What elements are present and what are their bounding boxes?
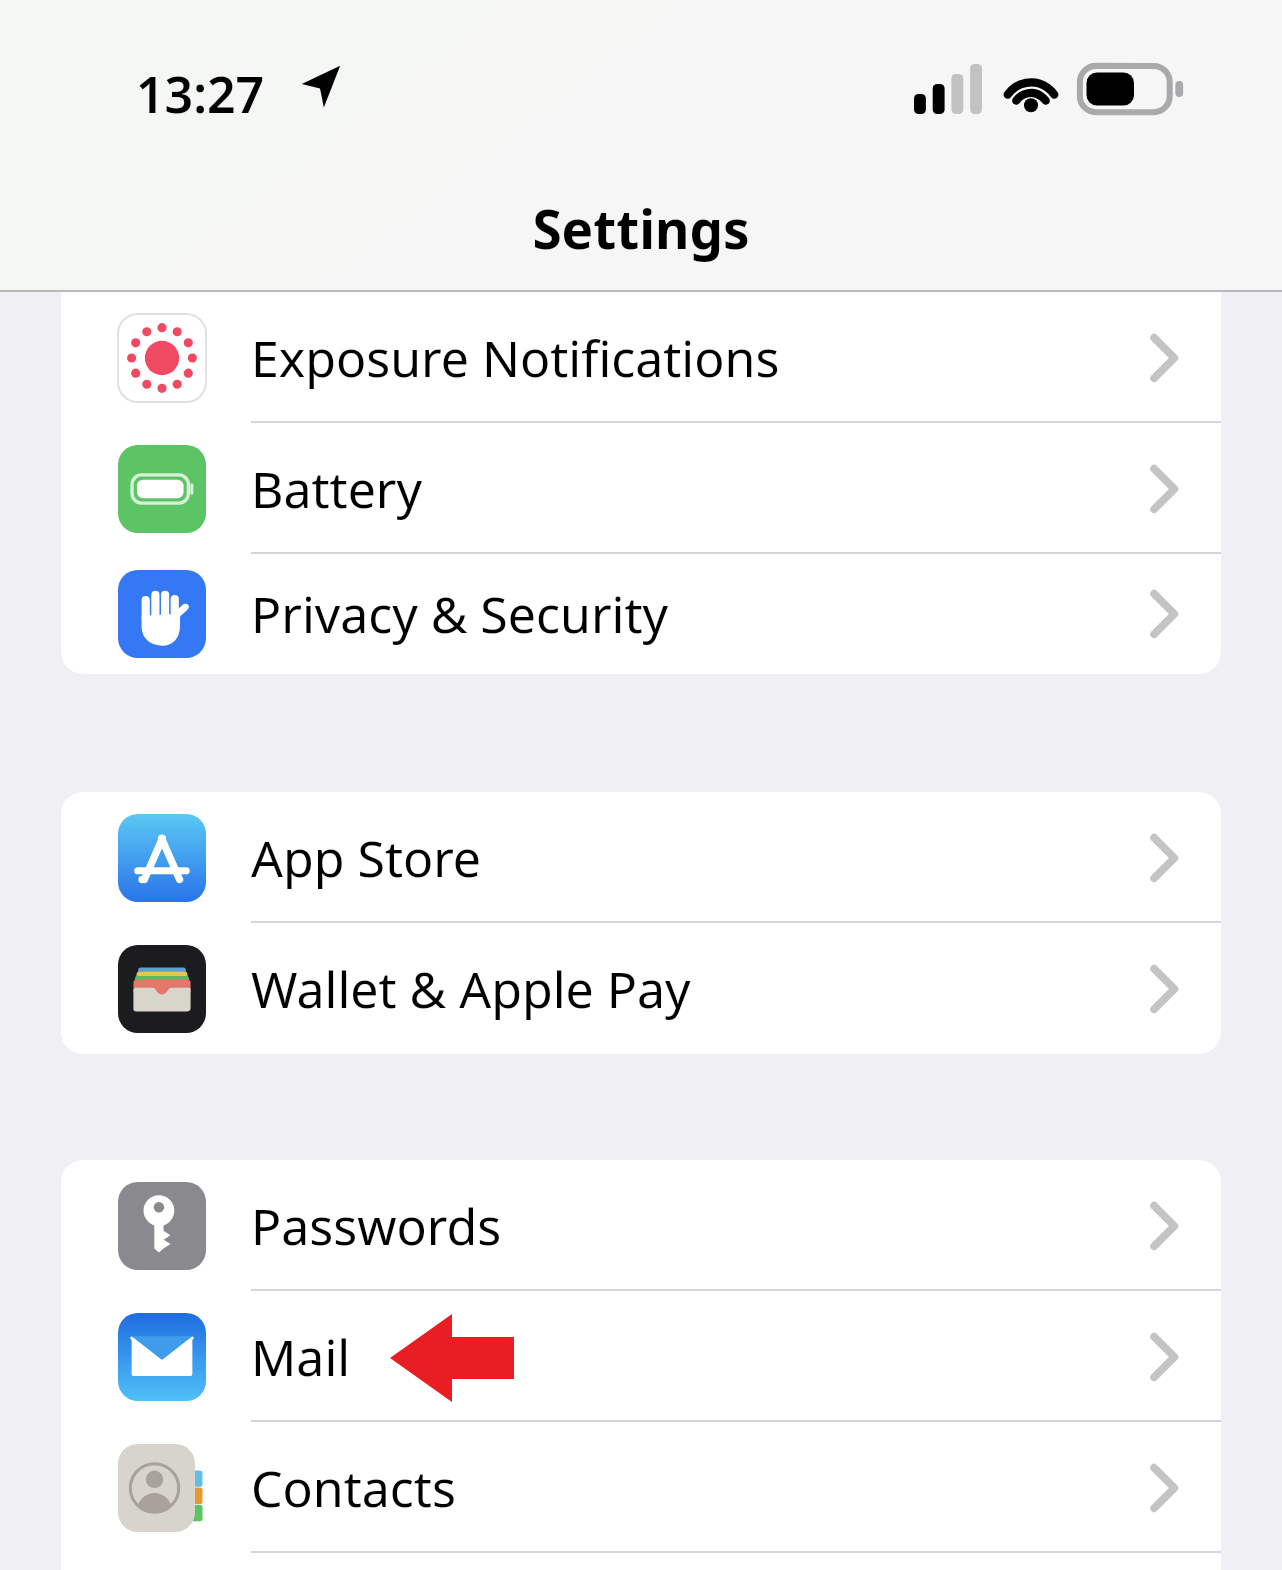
staticText: Privacy & Security (251, 580, 668, 648)
staticText: Battery (251, 455, 422, 523)
button[interactable]: Exposure Notifications (61, 292, 1221, 423)
button[interactable]: Privacy & Security (61, 554, 1221, 674)
button[interactable]: Wallet & Apple Pay (61, 923, 1221, 1054)
button[interactable]: Contacts (61, 1422, 1221, 1553)
staticText: Passwords (251, 1192, 502, 1260)
staticText: Settings (532, 192, 750, 264)
staticText: Wallet & Apple Pay (251, 955, 691, 1023)
staticText: Exposure Notifications (251, 324, 780, 392)
button[interactable]: Battery (61, 423, 1221, 554)
staticText: Contacts (251, 1454, 456, 1522)
button[interactable]: Passwords (61, 1160, 1221, 1291)
staticText: Mail (251, 1323, 351, 1391)
button[interactable]: App Store (61, 792, 1221, 923)
button[interactable]: Mail (61, 1291, 1221, 1422)
staticText: App Store (251, 824, 482, 892)
staticText: 13:27 (136, 60, 265, 128)
